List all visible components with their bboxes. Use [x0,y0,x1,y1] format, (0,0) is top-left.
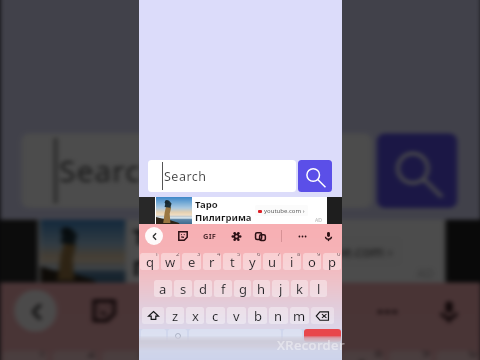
staticText: u [268,253,277,270]
button[interactable]: Back [145,227,163,245]
button[interactable]: Settings [232,232,241,241]
staticText: b [254,307,262,324]
staticText: 8 [374,350,384,360]
staticText: i [290,253,294,270]
staticText: Search [59,152,161,192]
button[interactable]: w [52,350,97,360]
staticText: youtube.com › [296,243,393,262]
button[interactable]: More options [297,231,308,242]
button[interactable]: g [234,280,251,297]
button[interactable]: f [214,280,232,297]
button[interactable]: youtube.com › [258,205,305,216]
button[interactable]: u [263,253,281,270]
button[interactable]: t [223,253,241,270]
button[interactable]: l [310,280,327,297]
button[interactable]: Back [14,290,57,332]
button[interactable]: Stickers [178,231,188,241]
button[interactable]: Backspace [311,307,334,324]
staticText: r [209,253,215,270]
button[interactable]: e [102,350,147,360]
button[interactable]: Space [189,329,281,342]
button[interactable]: a [154,280,172,297]
button[interactable]: n [269,307,288,324]
staticText: 6 [257,253,261,258]
button[interactable]: m [290,307,309,324]
staticText: c [212,307,219,324]
staticText: Пилигрима [133,252,268,283]
button[interactable]: c [206,307,225,324]
button[interactable]: b [248,307,267,324]
staticText: j [279,280,283,297]
button[interactable]: h [253,280,270,297]
staticText: l [317,280,321,297]
button[interactable]: q [2,350,47,360]
button[interactable]: z [166,307,184,324]
staticText: h [257,280,266,297]
staticText: 3 [137,350,147,360]
button[interactable]: Stickers [92,299,116,322]
staticText: e [188,253,196,270]
staticText: 7 [277,253,281,258]
button[interactable]: Search [148,160,296,192]
button[interactable]: Symbols [141,329,166,342]
staticText: n [274,307,283,324]
button[interactable]: Emoji [168,329,187,342]
button[interactable]: s [174,280,192,297]
staticText: z [172,307,179,324]
button[interactable]: w [161,253,180,270]
button[interactable]: GIF [203,231,217,241]
button[interactable]: Clipboard [255,231,266,242]
button[interactable]: GIF [152,299,185,322]
button[interactable]: Settings [220,301,242,322]
staticText: 9 [422,350,431,360]
button[interactable]: Voice input [436,299,462,325]
button[interactable]: i [283,253,301,270]
button[interactable]: Period [283,329,302,342]
button[interactable]: o [389,350,431,360]
staticText: AD [315,217,322,224]
button[interactable]: j [272,280,289,297]
button[interactable]: Enter [304,329,341,342]
button[interactable]: e [182,253,201,270]
button[interactable]: y [243,253,261,270]
button[interactable]: Search [21,133,372,208]
button[interactable]: Clipboard [275,299,301,325]
button[interactable]: More options [374,299,400,325]
staticText: o [308,253,316,270]
button[interactable]: p [436,350,479,360]
button[interactable]: Search [377,133,457,208]
button[interactable]: youtube.com › [282,238,393,264]
button[interactable]: q [140,253,159,270]
button[interactable]: Shift [142,307,164,324]
button[interactable]: Voice input [323,231,334,242]
button[interactable]: v [227,307,246,324]
staticText: 0 [469,350,479,360]
button[interactable]: x [186,307,204,324]
staticText: x [192,307,199,324]
staticText: v [233,307,240,324]
button[interactable]: k [291,280,308,297]
button[interactable]: o [303,253,321,270]
button[interactable]: r [203,253,221,270]
button[interactable]: d [194,280,212,297]
staticText: s [180,280,187,297]
button[interactable]: Search [298,160,332,192]
button[interactable]: p [323,253,341,270]
staticText: Таро [133,222,187,252]
staticText: 2 [176,253,180,258]
button[interactable]: i [341,350,384,360]
